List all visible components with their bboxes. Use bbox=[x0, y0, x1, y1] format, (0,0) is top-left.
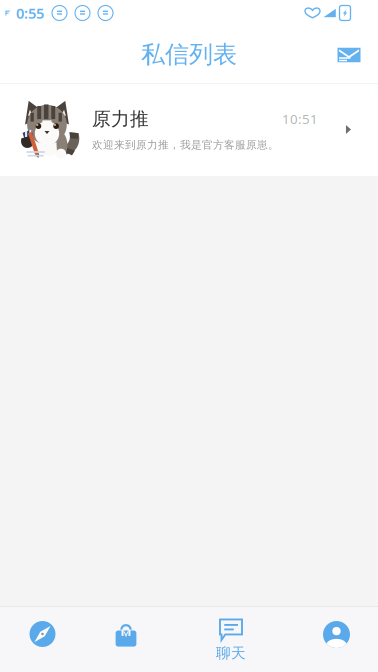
staticText: 原力推 bbox=[92, 107, 149, 130]
staticText: 私信列表 bbox=[141, 40, 237, 69]
button[interactable]: 原力推 bbox=[0, 83, 378, 176]
button[interactable]: Discover bbox=[0, 606, 85, 672]
staticText: 聊天 bbox=[216, 644, 246, 662]
staticText: 10:51 bbox=[282, 110, 318, 128]
staticText: 欢迎来到原力推，我是官方客服原崽。 bbox=[92, 138, 279, 151]
button[interactable]: 聊天 bbox=[167, 606, 295, 672]
button[interactable]: New message bbox=[328, 33, 370, 75]
button[interactable]: Profile bbox=[295, 606, 378, 672]
button[interactable]: Shop bbox=[85, 606, 167, 672]
staticText: 0:55 bbox=[16, 3, 44, 23]
